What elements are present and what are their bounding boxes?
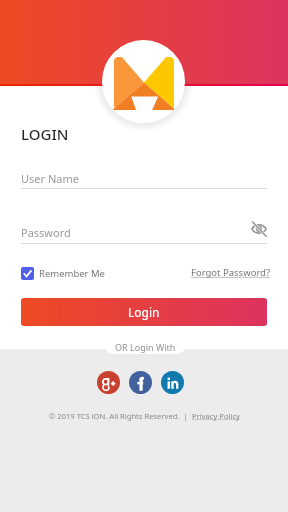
- button[interactable]: LinkedIn: [161, 371, 184, 394]
- button[interactable]: Forgot Password?: [191, 266, 271, 279]
- staticText: Login: [128, 304, 160, 320]
- staticText: Password: [21, 225, 71, 240]
- staticText: Remember Me: [39, 267, 105, 280]
- button[interactable]: Login: [21, 298, 267, 326]
- button[interactable]: Remember Me: [21, 267, 105, 280]
- button[interactable]: Google Plus: [97, 371, 120, 394]
- button[interactable]: Privacy Policy: [192, 411, 240, 421]
- button[interactable]: Facebook: [129, 371, 152, 394]
- staticText: User Name: [21, 171, 79, 186]
- staticText: © 2019 TCS iON. All Rights Reserved. |: [49, 411, 192, 421]
- staticText: LOGIN: [21, 124, 69, 144]
- staticText: Forgot Password?: [191, 266, 271, 279]
- staticText: OR Login With: [115, 341, 176, 353]
- button[interactable]: Show password: [249, 219, 269, 239]
